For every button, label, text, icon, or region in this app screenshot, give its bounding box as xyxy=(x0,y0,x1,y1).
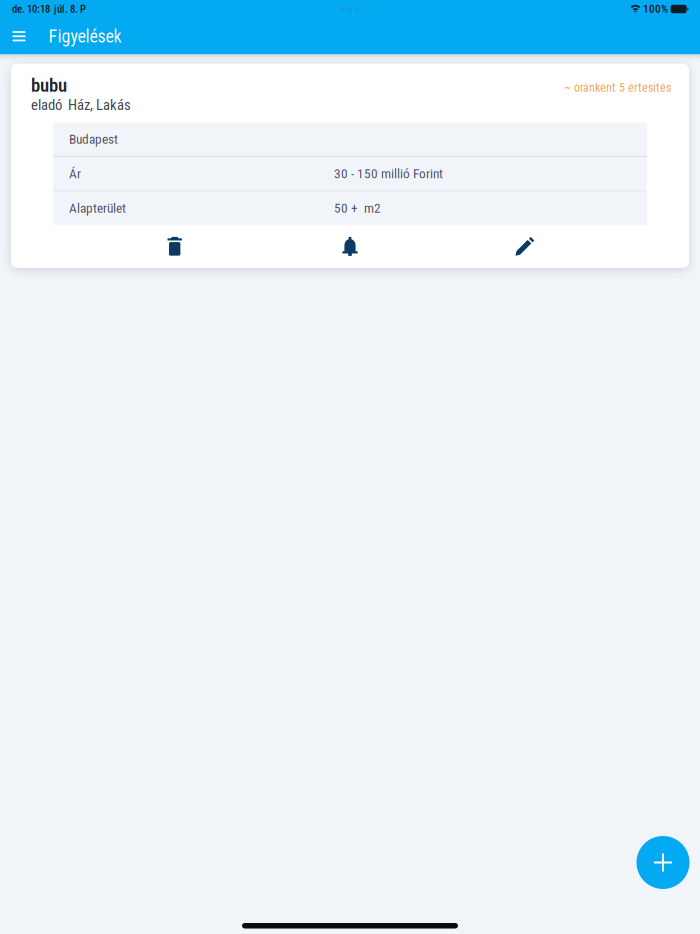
button[interactable]: Szerkesztés xyxy=(437,225,612,268)
button[interactable]: Menü xyxy=(0,18,38,54)
staticText: Figyelések xyxy=(48,26,121,47)
staticText: 100% xyxy=(643,2,668,16)
staticText: Budapest xyxy=(69,131,118,147)
button[interactable]: Értesítések xyxy=(262,225,437,268)
staticText: 50 + m2 xyxy=(334,200,381,216)
staticText: júl. 8. P xyxy=(54,3,86,15)
staticText: bubu xyxy=(31,74,67,96)
staticText: eladó Ház, Lakás xyxy=(31,96,131,114)
staticText: ~ óránként 5 értesítés xyxy=(564,80,671,95)
button[interactable]: Új figyelés hozzáadása xyxy=(636,836,689,889)
button[interactable]: Törlés xyxy=(87,225,262,268)
staticText: de. 10:18 xyxy=(12,3,50,15)
staticText: Ár xyxy=(69,166,81,181)
staticText: 30 - 150 millió Forint xyxy=(334,166,443,181)
staticText: Alapterület xyxy=(69,200,126,216)
